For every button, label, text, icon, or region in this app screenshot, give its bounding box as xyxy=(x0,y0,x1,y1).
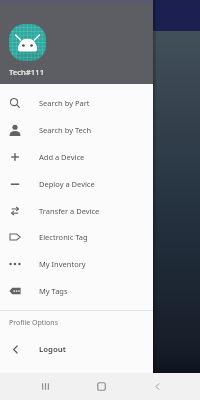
staticText: Add a Device xyxy=(39,152,85,162)
staticText: Search by Tech xyxy=(39,125,92,135)
button[interactable]: Search by Part xyxy=(0,89,153,116)
button[interactable]: Tech#111 xyxy=(0,0,153,84)
staticText: Search by Part xyxy=(39,98,90,108)
staticText: Transfer a Device xyxy=(39,206,100,216)
staticText: Deploy a Device xyxy=(39,179,95,189)
staticText: My Tags xyxy=(39,286,68,296)
staticText: Profile Options xyxy=(9,318,59,328)
button[interactable]: Logout xyxy=(0,336,153,362)
staticText: Electronic Tag xyxy=(39,232,88,242)
button[interactable]: Search by Tech xyxy=(0,116,153,143)
button[interactable]: Back xyxy=(143,373,171,400)
button[interactable]: My Tags xyxy=(0,277,153,304)
button[interactable]: Electronic Tag xyxy=(0,223,153,250)
staticText: Logout xyxy=(39,344,66,355)
button[interactable]: Home xyxy=(87,373,115,400)
button[interactable]: Recent apps xyxy=(31,373,59,400)
button[interactable]: Transfer a Device xyxy=(0,197,153,224)
button[interactable]: Deploy a Device xyxy=(0,170,153,197)
staticText: Tech#111 xyxy=(9,67,45,78)
staticText: My Inventory xyxy=(39,259,86,269)
button[interactable]: My Inventory xyxy=(0,250,153,277)
button[interactable]: Add a Device xyxy=(0,143,153,170)
